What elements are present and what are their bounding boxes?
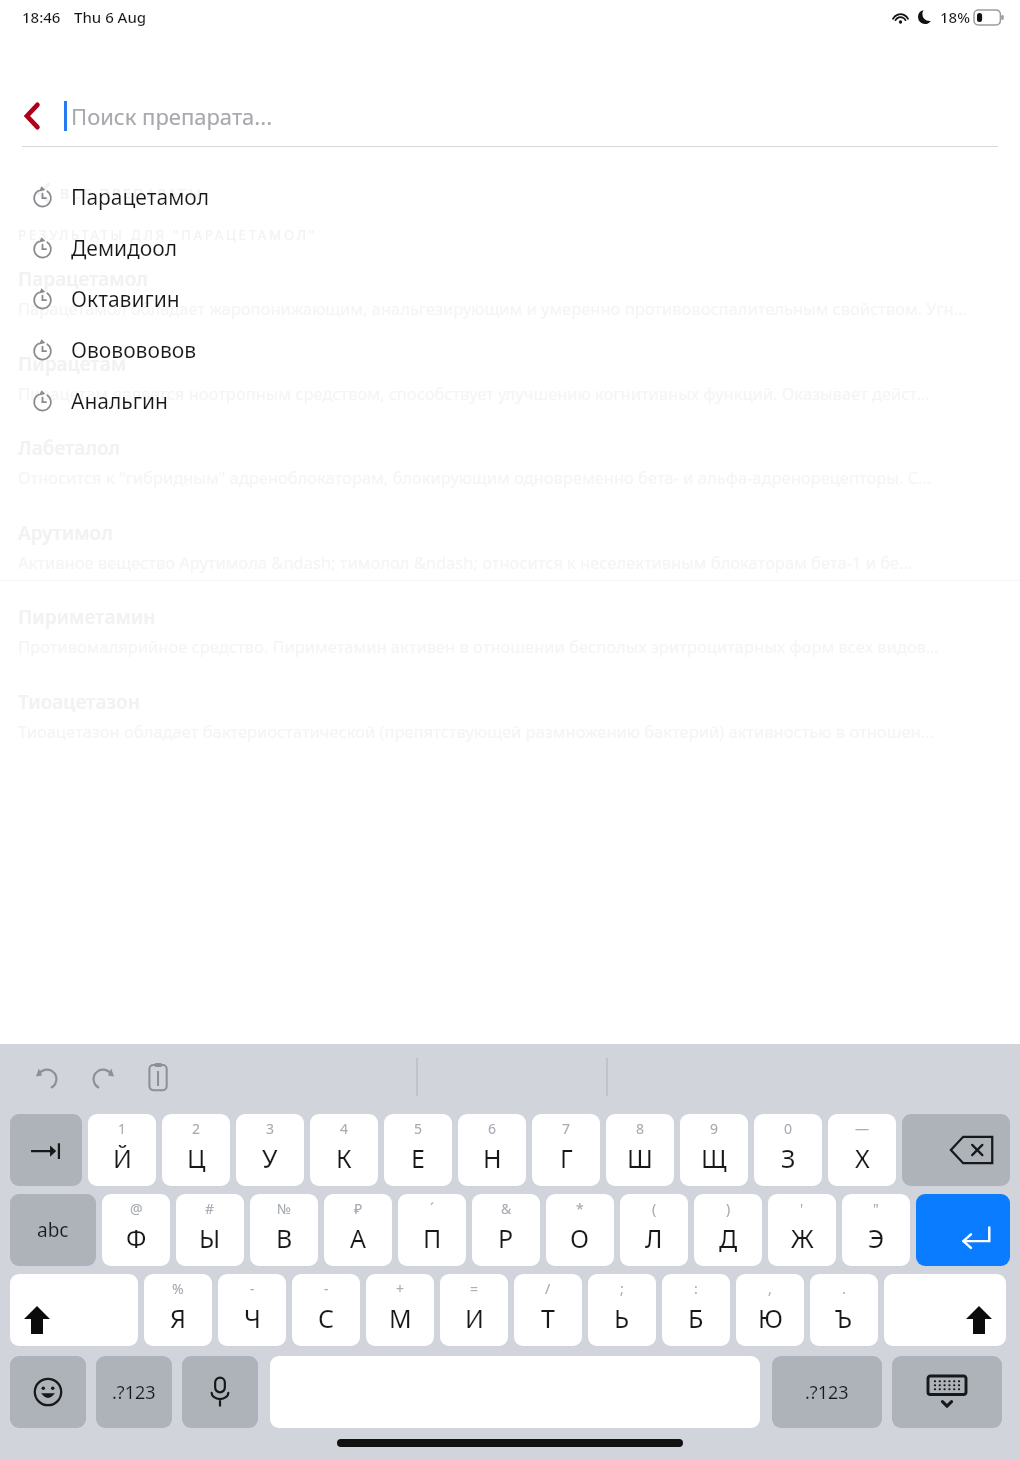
button[interactable]: Ововововов (0, 333, 1020, 367)
staticText: Ф (126, 1221, 147, 1255)
staticText: Я (170, 1301, 186, 1335)
staticText: Поиск препарата... (71, 101, 273, 131)
button[interactable]: Paste (136, 1054, 182, 1100)
button[interactable]: - (292, 1274, 360, 1346)
staticText: ВСЕ ПРЕПАРАТЫ (60, 184, 204, 203)
staticText: Противомалярийное средство. Пириметамин … (18, 635, 939, 657)
button[interactable]: 5 (384, 1114, 452, 1186)
button[interactable]: № (250, 1194, 318, 1266)
button[interactable]: - (218, 1274, 286, 1346)
button[interactable]: : (662, 1274, 730, 1346)
button[interactable]: ₽ (324, 1194, 392, 1266)
button[interactable]: 4 (310, 1114, 378, 1186)
button[interactable]: , (736, 1274, 804, 1346)
staticText: % (172, 1279, 184, 1298)
staticText: З (781, 1141, 796, 1175)
button[interactable]: Анальгин (0, 384, 1020, 418)
staticText: И (465, 1301, 484, 1335)
button[interactable]: ( (620, 1194, 688, 1266)
staticText: Н (483, 1141, 502, 1175)
button[interactable]: Поиск препарата... (71, 92, 1020, 140)
staticText: Относится к "гибридным" адреноблокаторам… (18, 466, 932, 488)
staticText: Октавигин (71, 285, 180, 314)
button[interactable]: + (366, 1274, 434, 1346)
staticText: А (350, 1221, 366, 1255)
staticText: 7 (562, 1119, 571, 1138)
button[interactable]: % (144, 1274, 212, 1346)
button[interactable]: # (176, 1194, 244, 1266)
staticText: * (576, 1199, 584, 1218)
staticText: Демидоол (71, 234, 178, 263)
staticText: + (396, 1279, 405, 1298)
button[interactable]: Shift (884, 1274, 1006, 1346)
staticText: Thu 6 Aug (74, 7, 147, 27)
staticText: — (855, 1119, 869, 1138)
button[interactable]: Shift (10, 1274, 138, 1346)
button[interactable]: / (514, 1274, 582, 1346)
staticText: Парацетамол обладает жаропонижающим, ана… (18, 297, 967, 319)
staticText: С (318, 1301, 335, 1335)
button[interactable]: 9 (680, 1114, 748, 1186)
button[interactable]: = (440, 1274, 508, 1346)
button[interactable]: ) (694, 1194, 762, 1266)
staticText: 8 (636, 1119, 645, 1138)
staticText: .?123 (112, 1380, 156, 1405)
staticText: Ововововов (71, 336, 197, 365)
button[interactable]: Redo (80, 1054, 126, 1100)
button[interactable]: 7 (532, 1114, 600, 1186)
staticText: Лабеталол (18, 435, 121, 461)
button[interactable]: 3 (236, 1114, 304, 1186)
button[interactable]: ´ (398, 1194, 466, 1266)
staticText: Й (113, 1141, 132, 1175)
staticText: Ц (187, 1141, 206, 1175)
staticText: РЕЗУЛЬТАТЫ ДЛЯ "ПАРАЦЕТАМОЛ" (18, 226, 317, 244)
staticText: Э (868, 1221, 885, 1255)
button[interactable]: — (828, 1114, 896, 1186)
staticText: Б (688, 1301, 704, 1335)
button[interactable]: 8 (606, 1114, 674, 1186)
staticText: Р (498, 1221, 514, 1255)
button[interactable]: Numbers (96, 1356, 172, 1428)
staticText: М (389, 1301, 412, 1335)
button[interactable]: Hide keyboard (892, 1356, 1002, 1428)
button[interactable]: 1 (88, 1114, 156, 1186)
staticText: Л (645, 1221, 663, 1255)
staticText: Пирацетам является ноотропным средством,… (18, 382, 930, 404)
button[interactable]: & (472, 1194, 540, 1266)
staticText: & (501, 1199, 512, 1218)
button[interactable]: Парацетамол (0, 180, 1020, 214)
button[interactable]: Return (916, 1194, 1010, 1266)
button[interactable]: . (810, 1274, 878, 1346)
staticText: Ъ (835, 1301, 853, 1335)
button[interactable]: Numbers (772, 1356, 882, 1428)
staticText: Парацетамол (18, 266, 148, 292)
staticText: Е (411, 1141, 425, 1175)
button[interactable]: @ (102, 1194, 170, 1266)
button[interactable]: 2 (162, 1114, 230, 1186)
staticText: ' (800, 1199, 804, 1218)
button[interactable]: ' (768, 1194, 836, 1266)
button[interactable]: 6 (458, 1114, 526, 1186)
staticText: . (842, 1279, 846, 1298)
button[interactable]: Октавигин (0, 282, 1020, 316)
staticText: ; (620, 1279, 624, 1298)
staticText: Пирацетам (18, 351, 127, 377)
button[interactable]: Демидоол (0, 231, 1020, 265)
button[interactable]: 0 (754, 1114, 822, 1186)
button[interactable]: Back (0, 92, 64, 140)
staticText: ) (726, 1199, 731, 1218)
staticText: Анальгин (71, 387, 168, 416)
button[interactable]: * (546, 1194, 614, 1266)
button[interactable]: Tab (10, 1114, 82, 1186)
button[interactable]: Letters (10, 1194, 96, 1266)
button[interactable]: " (842, 1194, 910, 1266)
button[interactable]: Emoji (10, 1356, 86, 1428)
staticText: Щ (701, 1141, 727, 1175)
staticText: ₽ (354, 1199, 363, 1218)
button[interactable]: Undo (24, 1054, 70, 1100)
button[interactable]: Backspace (902, 1114, 1010, 1186)
button[interactable]: ; (588, 1274, 656, 1346)
button[interactable]: Dictation (182, 1356, 258, 1428)
staticText: Ш (627, 1141, 653, 1175)
